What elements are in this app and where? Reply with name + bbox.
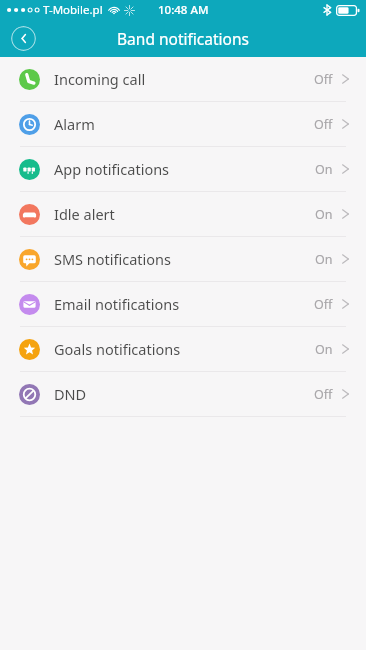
- button[interactable]: Email notifications: [0, 282, 366, 326]
- staticText: Incoming call: [54, 69, 314, 89]
- staticText: 10:48 AM: [158, 2, 209, 18]
- staticText: T-Mobile.pl: [43, 2, 103, 18]
- staticText: Band notifications: [117, 28, 249, 49]
- button[interactable]: SMS notifications: [0, 237, 366, 281]
- button[interactable]: Alarm: [0, 102, 366, 146]
- staticText: On: [315, 206, 333, 223]
- button[interactable]: Idle alert: [0, 192, 366, 236]
- staticText: Alarm: [54, 114, 314, 134]
- button[interactable]: App notifications: [0, 147, 366, 191]
- staticText: SMS notifications: [54, 249, 315, 269]
- staticText: Email notifications: [54, 294, 314, 314]
- staticText: DND: [54, 384, 314, 404]
- staticText: On: [315, 341, 333, 358]
- staticText: Off: [314, 116, 333, 133]
- button[interactable]: DND: [0, 372, 366, 416]
- button[interactable]: Goals notifications: [0, 327, 366, 371]
- staticText: Off: [314, 296, 333, 313]
- staticText: Goals notifications: [54, 339, 315, 359]
- button[interactable]: Incoming call: [0, 57, 366, 101]
- button[interactable]: Back: [11, 26, 36, 51]
- staticText: Idle alert: [54, 204, 315, 224]
- staticText: App notifications: [54, 159, 315, 179]
- staticText: On: [315, 251, 333, 268]
- staticText: Off: [314, 386, 333, 403]
- staticText: On: [315, 161, 333, 178]
- staticText: Off: [314, 71, 333, 88]
